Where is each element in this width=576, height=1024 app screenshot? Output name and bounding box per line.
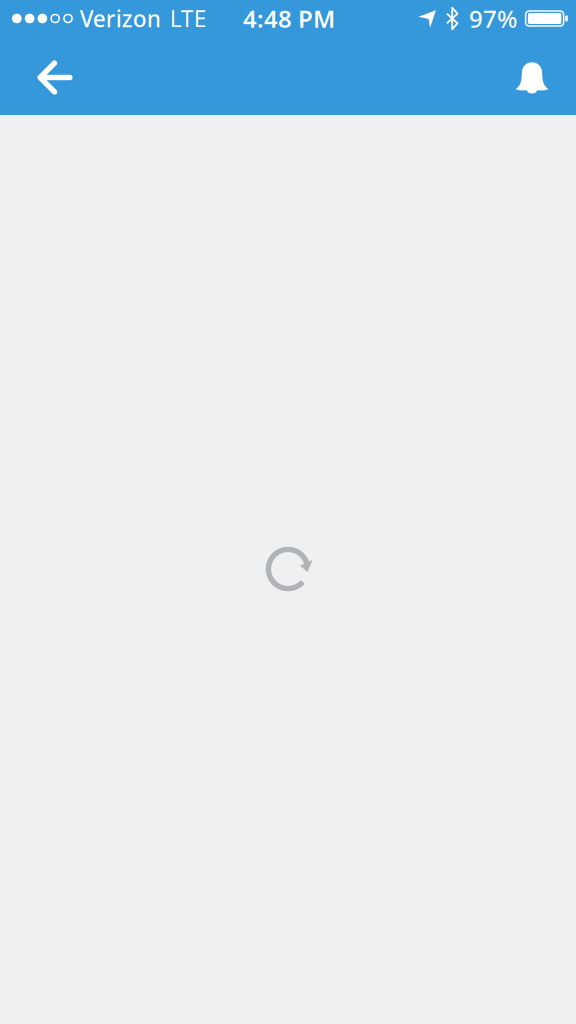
staticText: 4:48 PM — [243, 3, 335, 34]
staticText: Verizon — [80, 3, 161, 33]
staticText: 97% — [469, 3, 517, 34]
staticText: LTE — [170, 3, 207, 33]
button[interactable]: Notifications — [497, 43, 567, 111]
button[interactable]: Back — [20, 43, 90, 111]
